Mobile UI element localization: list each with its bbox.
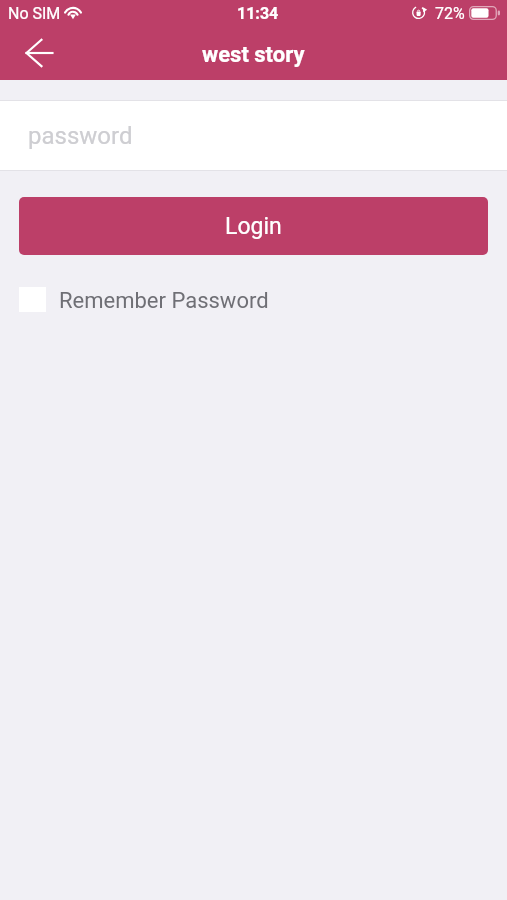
staticText: 11:34 — [237, 4, 279, 23]
button[interactable]: Back — [17, 30, 62, 75]
button[interactable]: password — [0, 100, 507, 171]
staticText: west story — [202, 42, 305, 68]
staticText: 72% — [435, 4, 465, 23]
staticText: No SIM — [8, 4, 61, 23]
staticText: password — [28, 122, 133, 150]
staticText: Remember Password — [59, 288, 269, 314]
staticText: Login — [225, 213, 282, 240]
button[interactable]: Remember Password — [19, 281, 269, 317]
button[interactable]: Login — [19, 197, 488, 255]
